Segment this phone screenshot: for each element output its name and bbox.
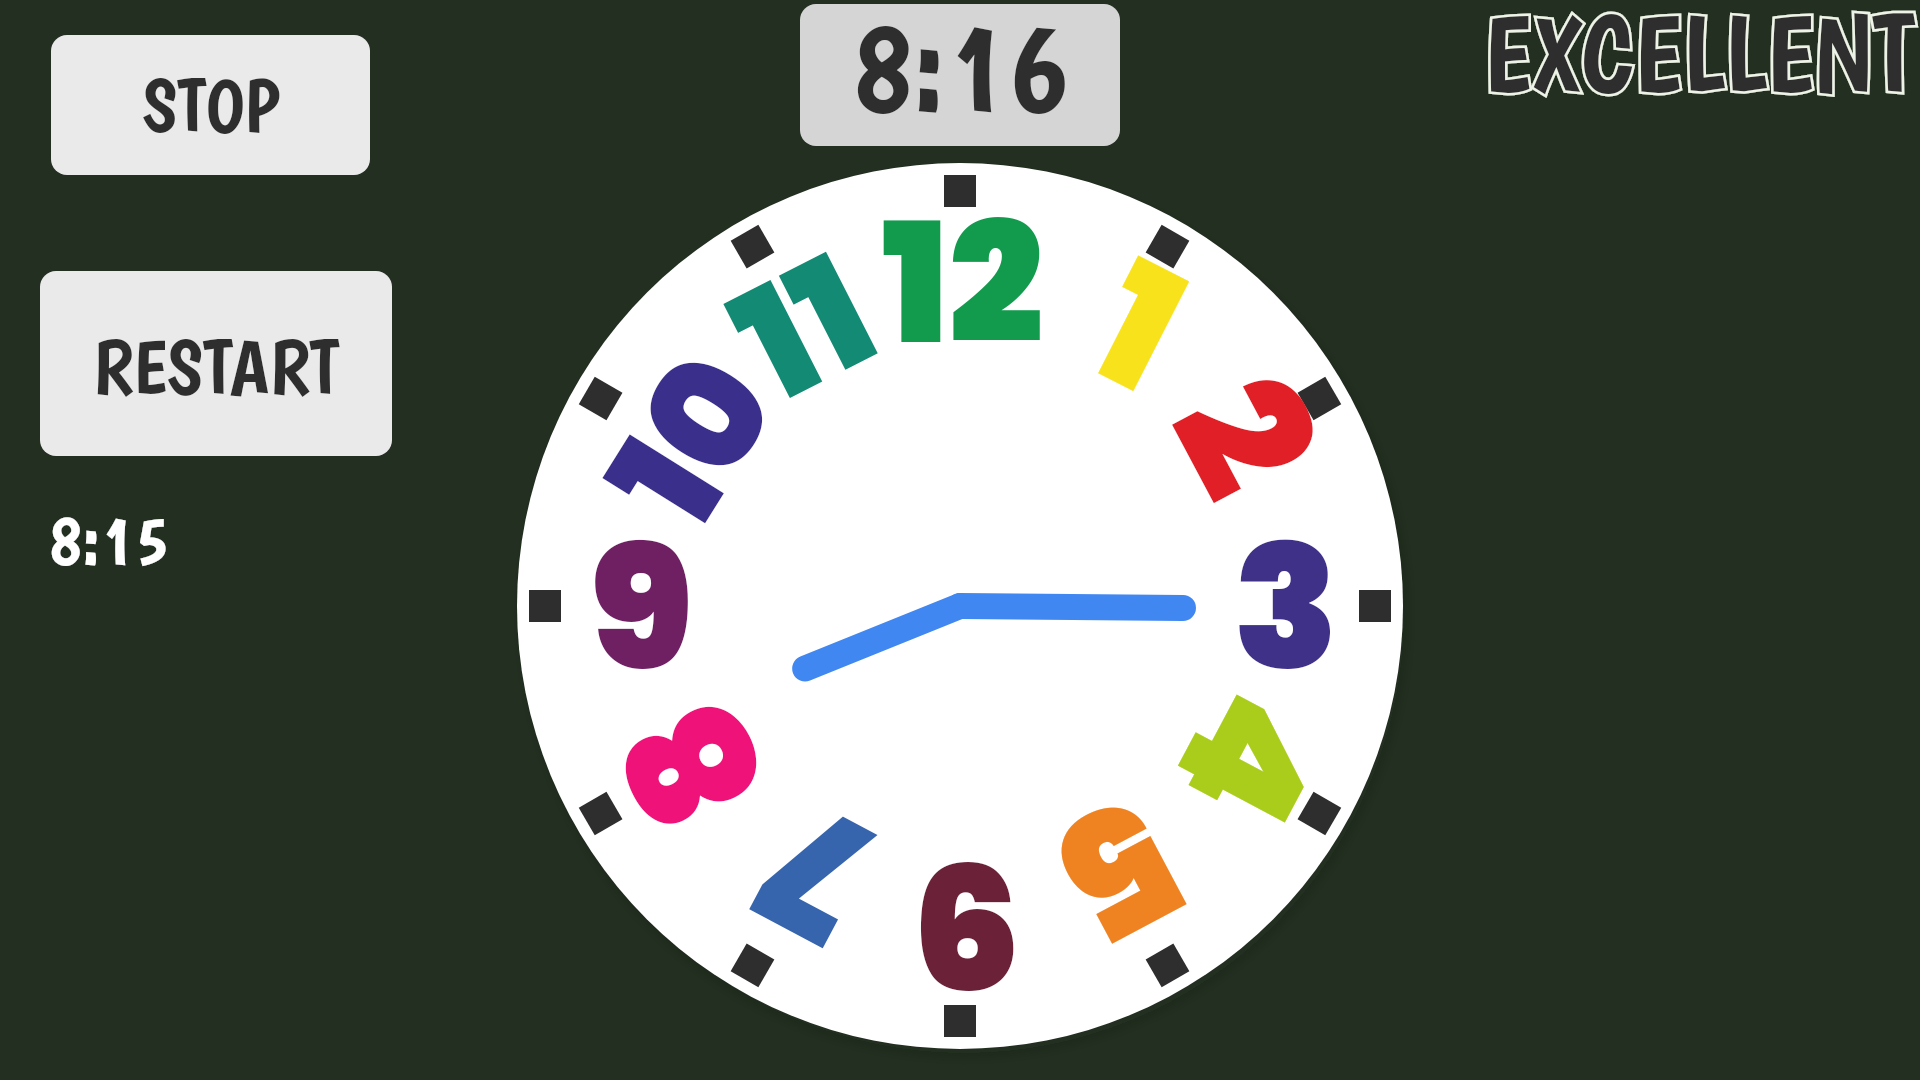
button[interactable]: Analog clock face showing 8:16 [517, 163, 1403, 1049]
staticText: 8 [560, 658, 827, 869]
button[interactable]: STOP [51, 35, 370, 175]
staticText: 4 [1117, 650, 1380, 866]
staticText: 9 [590, 487, 693, 728]
staticText: 12 [882, 167, 1044, 401]
staticText: 10 [560, 316, 827, 566]
staticText: 3 [1233, 487, 1339, 728]
staticText: 11 [699, 203, 910, 454]
staticText: 5 [1013, 732, 1227, 999]
button[interactable]: 8:16 [800, 4, 1120, 146]
staticText: 6 [912, 809, 1021, 1050]
staticText: 8:16 [851, 4, 1069, 132]
staticText: STOP [142, 61, 279, 149]
staticText: 7 [721, 744, 913, 999]
staticText: 2 [1115, 336, 1374, 536]
staticText: RESTART [93, 321, 339, 411]
staticText: 8:15 [48, 498, 168, 581]
staticText: 1 [1054, 207, 1221, 448]
button[interactable]: RESTART [40, 271, 392, 456]
